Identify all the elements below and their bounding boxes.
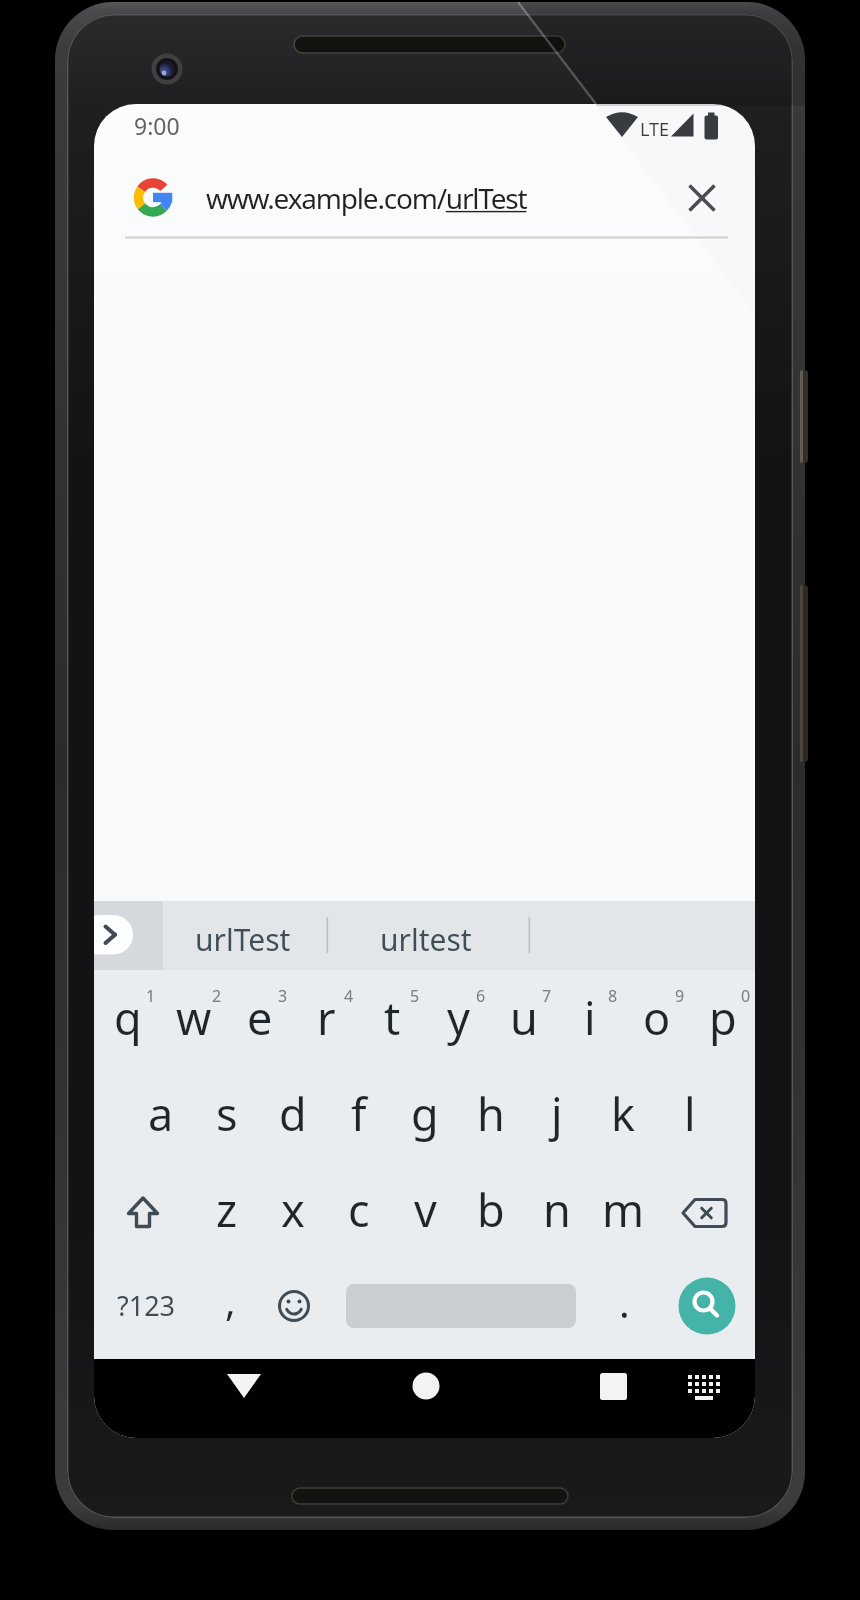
staticText: 1 [146,985,156,1007]
button[interactable]: i [553,974,627,1060]
staticText: q [114,987,142,1048]
button[interactable]: g [388,1070,462,1156]
staticText: h [477,1083,505,1144]
button[interactable]: c [322,1166,396,1252]
staticText: z [216,1179,238,1240]
staticText: v [414,1179,437,1240]
button[interactable] [261,1273,327,1339]
button[interactable]: ?123 [94,1280,218,1331]
staticText: l [684,1083,696,1144]
staticText: e [247,987,273,1048]
staticText: j [551,1083,563,1144]
button[interactable]: . [590,1264,658,1340]
staticText: c [348,1179,370,1240]
button[interactable]: e [223,974,297,1060]
button[interactable] [673,1180,739,1246]
button[interactable]: t [355,974,429,1060]
button[interactable]: p [686,974,755,1060]
staticText: g [411,1083,439,1144]
staticText: 3 [278,985,288,1007]
button[interactable]: b [454,1166,528,1252]
staticText: k [611,1083,636,1144]
staticText: www.example.com/urlTest [206,179,527,217]
staticText: t [384,987,401,1048]
staticText: 8 [608,985,618,1007]
staticText: b [477,1179,505,1240]
button[interactable]: k [586,1070,660,1156]
staticText: 9:00 [134,110,180,141]
button[interactable]: l [653,1070,727,1156]
staticText: m [602,1179,645,1240]
button[interactable]: urlTest [115,911,370,968]
button[interactable] [211,1353,277,1419]
button[interactable]: j [520,1070,594,1156]
button[interactable] [580,1353,646,1419]
staticText: LTE [640,117,670,142]
staticText: . [619,1275,630,1329]
button[interactable]: h [454,1070,528,1156]
staticText: o [643,987,671,1048]
staticText: y [447,987,470,1048]
staticText: urltest [380,919,472,960]
button[interactable]: z [190,1166,264,1252]
staticText: f [351,1083,367,1144]
staticText: s [216,1083,238,1144]
button[interactable]: m [586,1166,660,1252]
button[interactable] [671,1354,737,1420]
staticText: urlTest [195,919,291,960]
button[interactable] [110,1180,176,1246]
staticText: 9 [675,985,685,1007]
staticText: 6 [476,985,486,1007]
button[interactable]: r [289,974,363,1060]
staticText: i [584,987,596,1048]
button[interactable]: u [487,974,561,1060]
button[interactable]: y [421,974,495,1060]
staticText: , [225,1273,236,1327]
button[interactable]: o [620,974,694,1060]
staticText: x [281,1179,305,1240]
staticText: 0 [741,985,751,1007]
button[interactable]: , [196,1262,264,1338]
button[interactable]: q [94,974,165,1060]
button[interactable]: x [256,1166,330,1252]
staticText: p [709,987,737,1048]
button[interactable]: urltest [298,911,553,968]
button[interactable]: www.example.com/urlTest [206,176,626,220]
button[interactable]: w [157,974,231,1060]
staticText: u [510,987,538,1048]
button[interactable] [393,1353,459,1419]
staticText: d [279,1083,307,1144]
staticText: n [543,1179,571,1240]
button[interactable]: a [124,1070,198,1156]
button[interactable] [678,1277,736,1335]
staticText: 5 [410,985,420,1007]
staticText: 2 [212,985,222,1007]
button[interactable] [682,178,722,218]
staticText: a [148,1083,174,1144]
button[interactable]: f [322,1070,396,1156]
staticText: ?123 [117,1287,176,1324]
button[interactable]: s [190,1070,264,1156]
button[interactable]: d [256,1070,330,1156]
staticText: 7 [542,985,552,1007]
staticText: w [176,987,212,1048]
staticText: 4 [344,985,354,1007]
button[interactable]: v [388,1166,462,1252]
staticText: r [317,987,336,1048]
button[interactable]: n [520,1166,594,1252]
